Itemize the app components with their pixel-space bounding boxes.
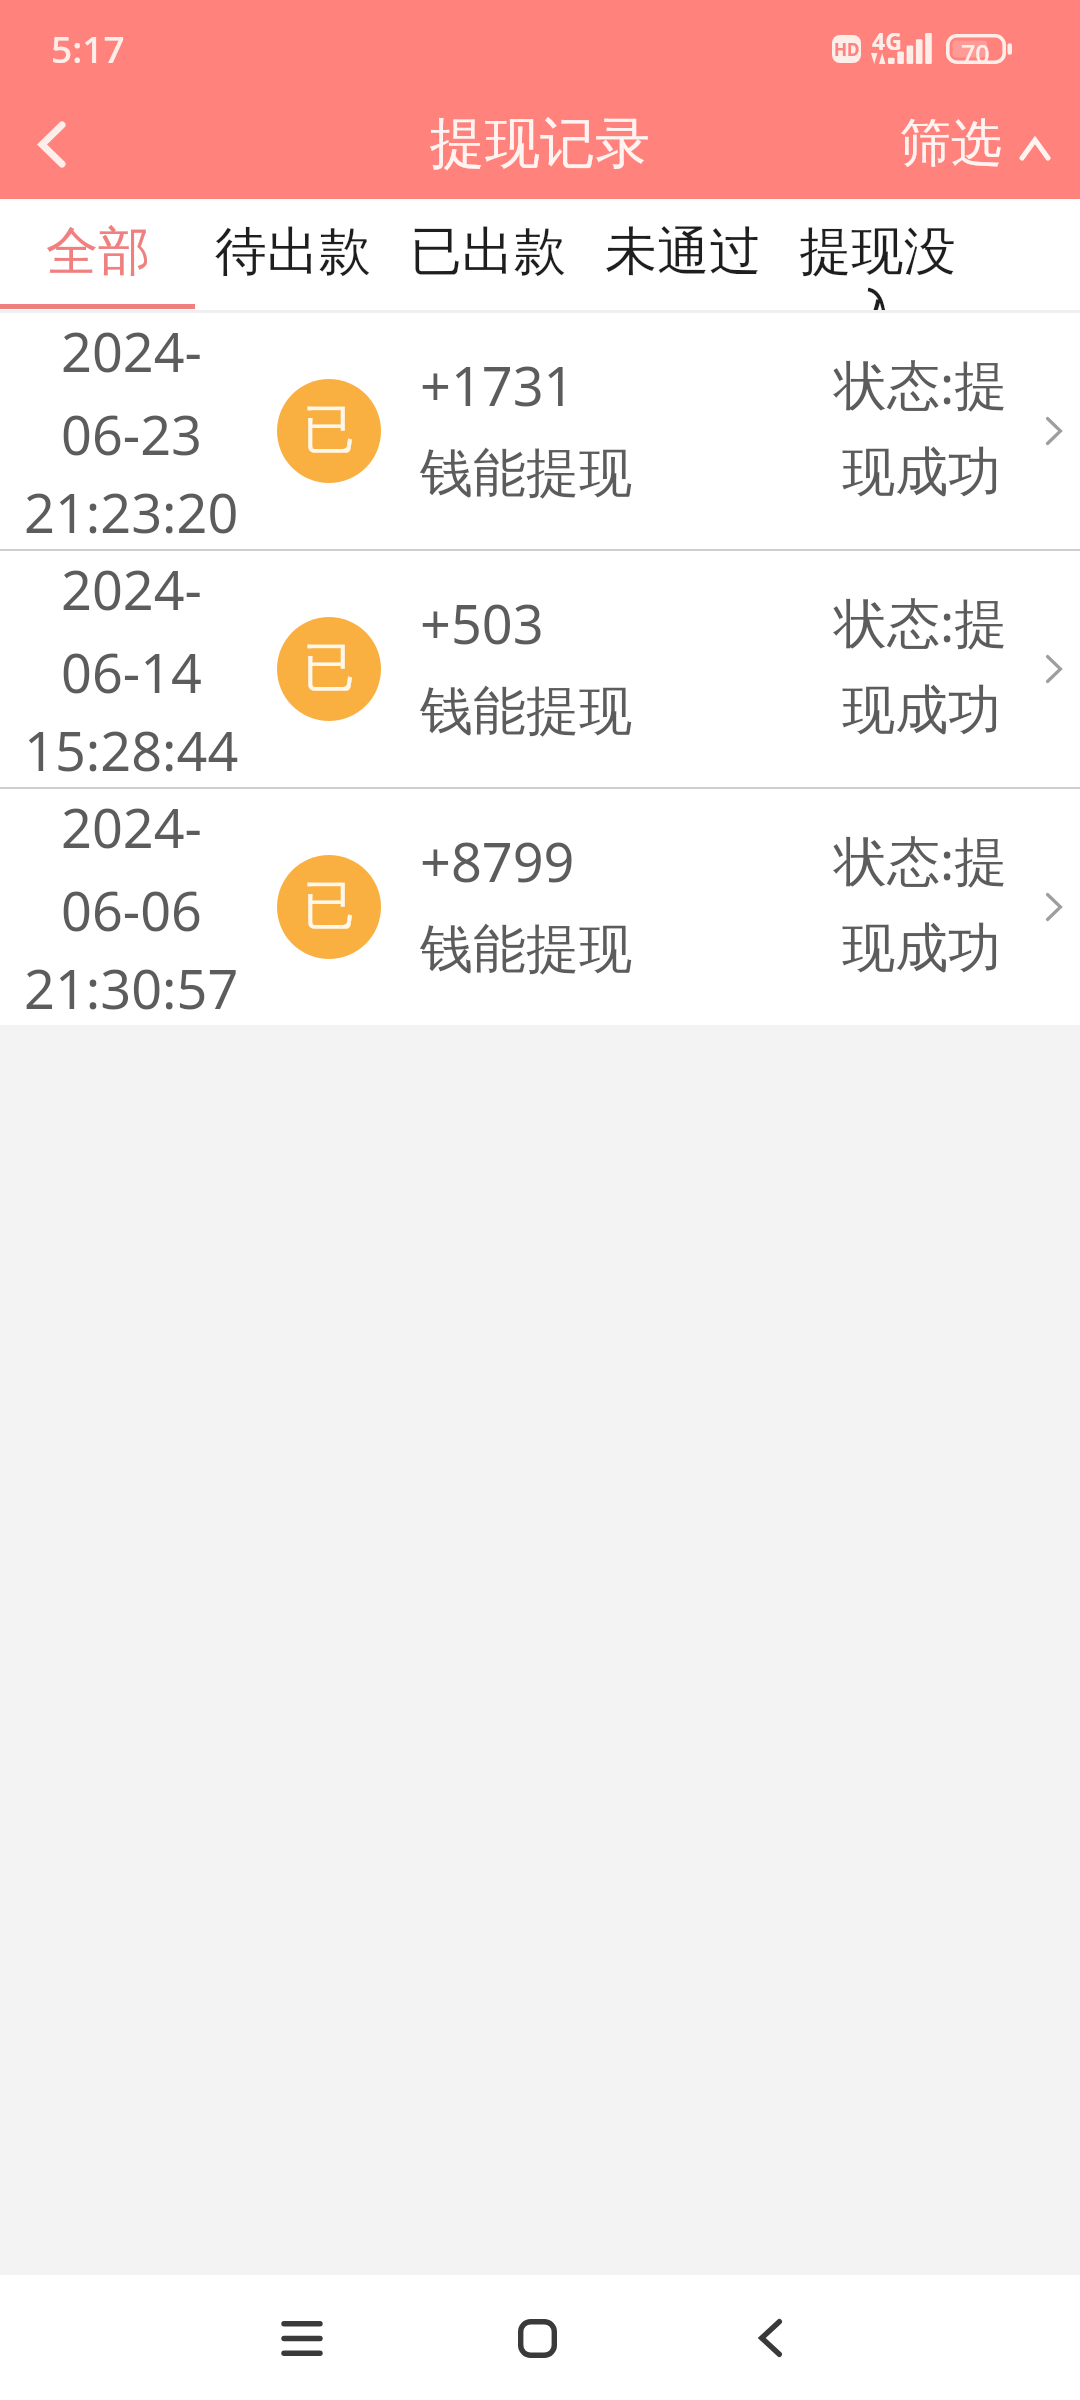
staticText: 现成功 (842, 439, 1001, 506)
staticText: 待出款 (215, 219, 371, 285)
staticText: +503 (420, 586, 544, 660)
staticText: 未通过 (605, 219, 761, 285)
staticText: +8799 (420, 824, 575, 898)
staticText: 06-23 (61, 397, 202, 471)
button[interactable]: 已出款 (390, 199, 585, 313)
button[interactable]: 筛选 (880, 99, 1080, 199)
staticText: 已 (303, 635, 355, 701)
staticText: 2024- (61, 552, 202, 626)
button[interactable]: 2024- (0, 313, 1080, 549)
staticText: 已 (303, 397, 355, 463)
staticText: 70 (961, 36, 990, 64)
button[interactable]: 提现没入 (780, 199, 975, 313)
staticText: 现成功 (842, 915, 1001, 982)
staticText: 已出款 (410, 219, 566, 285)
button[interactable]: 未通过 (585, 199, 780, 313)
staticText: 提现记录 (430, 109, 650, 178)
staticText: 2024- (61, 314, 202, 388)
staticText: 已 (303, 873, 355, 939)
staticText: 提现没入 (780, 219, 975, 313)
staticText: 筛选 (900, 111, 1002, 175)
button[interactable]: 2024- (0, 789, 1080, 1025)
staticText: 5:17 (51, 23, 125, 73)
button[interactable]: 待出款 (195, 199, 390, 313)
staticText: 全部 (46, 219, 150, 285)
staticText: +1731 (420, 348, 575, 422)
staticText: 状态:提 (834, 347, 1008, 419)
staticText: 现成功 (842, 677, 1001, 744)
staticText: 21:23:20 (24, 475, 239, 545)
staticText: 状态:提 (834, 585, 1008, 657)
staticText: 4G (872, 25, 902, 56)
staticText: 06-06 (61, 873, 202, 947)
staticText: 钱能提现 (420, 916, 632, 983)
staticText: 2024- (61, 790, 202, 864)
button[interactable]: Back (0, 99, 102, 199)
button[interactable]: Recent apps (242, 2278, 362, 2398)
staticText: 状态:提 (834, 823, 1008, 895)
button[interactable]: 2024- (0, 551, 1080, 787)
staticText: 06-14 (61, 635, 202, 709)
button[interactable]: Home (477, 2278, 597, 2398)
button[interactable]: Back (710, 2278, 830, 2398)
button[interactable]: 全部 (0, 199, 195, 313)
staticText: 钱能提现 (420, 440, 632, 507)
staticText: 15:28:44 (24, 713, 239, 783)
staticText: 21:30:57 (24, 951, 239, 1021)
staticText: HD (834, 38, 860, 61)
staticText: 钱能提现 (420, 678, 632, 745)
